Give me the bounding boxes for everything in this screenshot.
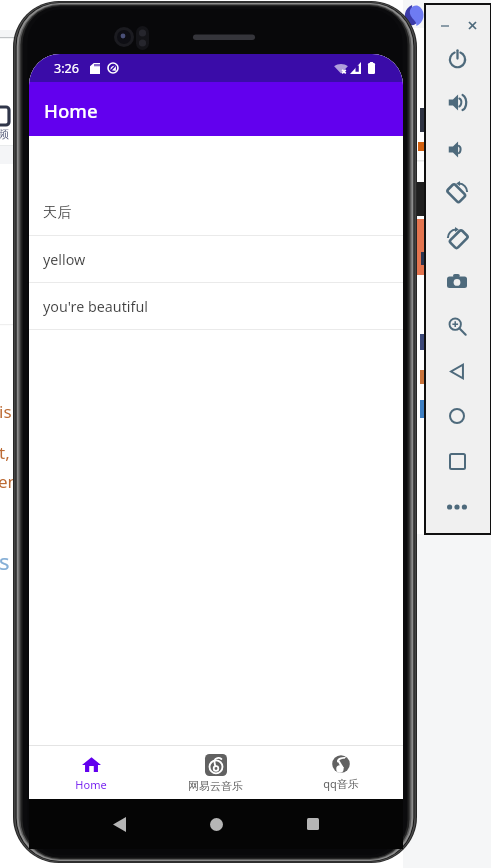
staticText: yellow [43,250,86,269]
staticText: you're beautiful [43,297,148,316]
button[interactable]: Screenshot [441,266,473,298]
staticText: 3:26 [54,60,79,77]
button[interactable]: Recents [291,802,335,846]
button[interactable]: Home [194,802,238,846]
button[interactable]: Rotate left [441,175,473,207]
staticText: en [0,470,19,493]
button[interactable]: Zoom [441,310,473,342]
button[interactable]: Back [441,355,473,387]
staticText: Home [44,98,98,123]
button[interactable]: Home [441,400,473,432]
button[interactable]: 天后 [29,189,403,236]
staticText: 天后 [43,203,72,221]
staticText: 网易云音乐 [188,779,243,793]
button[interactable]: qq音乐 [278,755,403,791]
button[interactable]: Overview [441,445,473,477]
staticText: 频 [0,127,9,141]
button[interactable]: Home [29,755,153,792]
button[interactable]: Minimize [432,13,457,38]
button[interactable]: Rotate right [441,221,473,253]
staticText: qq音乐 [323,776,359,791]
staticText: t, [0,441,10,464]
button[interactable]: Back [97,802,141,846]
button[interactable]: Volume up [441,86,473,118]
button[interactable]: yellow [29,236,403,283]
button[interactable]: Close [460,13,485,38]
button[interactable]: 网易云音乐 [153,754,278,793]
staticText: is [0,400,12,423]
staticText: s [0,546,10,576]
button[interactable]: Power [441,42,473,74]
button[interactable]: you're beautiful [29,283,403,330]
button[interactable]: More [441,491,473,523]
button[interactable]: Volume down [441,133,473,165]
staticText: Home [75,777,107,792]
